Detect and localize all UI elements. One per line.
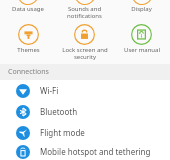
button[interactable]: Sounds and notifications	[56, 0, 113, 22]
staticText: Sounds and notifications	[67, 5, 102, 20]
staticText: User manual	[124, 46, 160, 54]
staticText: Connections	[8, 67, 49, 77]
button[interactable]: Wi-Fi	[0, 80, 170, 101]
staticText: Mobile hotspot and tethering	[40, 146, 151, 157]
button[interactable]: Mobile hotspot and tethering	[0, 143, 170, 160]
staticText: Display	[131, 5, 152, 13]
staticText: Bluetooth	[40, 106, 78, 117]
button[interactable]: Data usage	[0, 0, 56, 22]
button[interactable]: Display	[113, 0, 170, 22]
staticText: Wi-Fi	[40, 85, 59, 96]
button[interactable]: Bluetooth	[0, 101, 170, 122]
button[interactable]: Lock screen and security	[56, 22, 113, 62]
staticText: Flight mode	[40, 127, 85, 138]
button[interactable]: User manual	[113, 22, 170, 62]
button[interactable]: Themes	[0, 22, 56, 62]
staticText: Lock screen and security	[62, 46, 108, 61]
staticText: Themes	[17, 46, 40, 54]
button[interactable]: Flight mode	[0, 122, 170, 143]
staticText: Data usage	[12, 5, 44, 13]
